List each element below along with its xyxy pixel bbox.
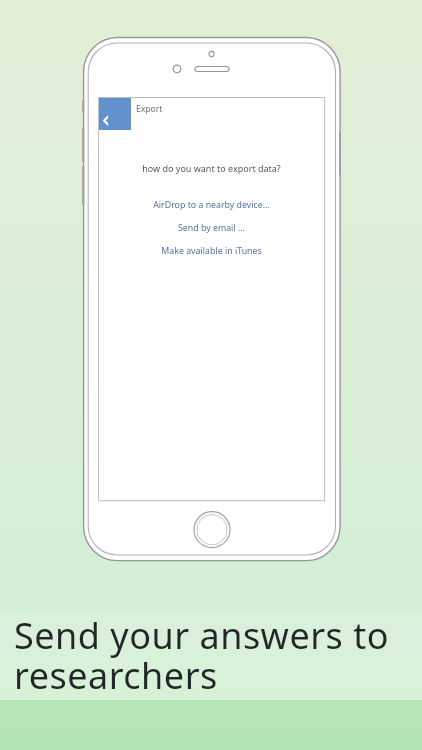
staticText: AirDrop to a nearby device... [153,199,270,211]
staticText: researchers [14,651,218,700]
staticText: Export [136,103,163,115]
staticText: Make available in iTunes [161,245,262,257]
button[interactable]: Back [99,98,131,130]
button[interactable]: Send by email ... [98,221,325,235]
button[interactable]: Make available in iTunes [98,244,325,258]
staticText: Send by email ... [178,222,245,234]
button[interactable]: AirDrop to a nearby device... [98,198,325,212]
staticText: how do you want to export data? [142,162,281,174]
staticText: Send your answers to [14,611,389,660]
